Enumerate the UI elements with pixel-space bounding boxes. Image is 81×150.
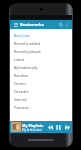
button[interactable]: Best Lists <box>10 31 72 39</box>
staticText: Random <box>14 73 29 78</box>
button[interactable]: Starred <box>10 95 72 103</box>
staticText: Recently played <box>14 49 41 54</box>
staticText: My Playlists Radio <box>22 123 46 128</box>
button[interactable]: Pause <box>54 123 63 132</box>
button[interactable]: Decades <box>10 87 72 95</box>
button[interactable]: Next track <box>63 123 71 131</box>
staticText: Starred <box>14 97 27 102</box>
button[interactable]: Random <box>10 71 72 79</box>
button[interactable]: Recently played <box>10 47 72 55</box>
button[interactable]: Latest <box>10 55 72 63</box>
button[interactable]: Open navigation drawer <box>12 21 19 28</box>
button[interactable]: My Playlists Radio <box>10 121 72 133</box>
staticText: Latest <box>14 57 25 62</box>
staticText: Decades <box>14 89 29 94</box>
button[interactable]: More options <box>64 22 70 28</box>
button[interactable]: Recently added <box>10 39 72 47</box>
button[interactable]: Genres <box>10 79 72 87</box>
staticText: My Artist latest single <box>22 128 46 132</box>
staticText: Podcasts <box>14 105 30 110</box>
button[interactable]: Search <box>57 21 64 28</box>
button[interactable]: Alphabetically <box>10 63 72 71</box>
staticText: Recently added <box>14 41 40 46</box>
button[interactable]: Previous track <box>46 123 54 131</box>
staticText: Best Lists <box>14 33 30 38</box>
staticText: Genres <box>14 81 27 86</box>
staticText: Bookmarks <box>20 22 57 28</box>
button[interactable]: Podcasts <box>10 103 72 111</box>
staticText: Alphabetically <box>14 65 38 70</box>
